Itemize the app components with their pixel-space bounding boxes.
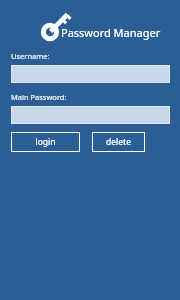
button[interactable] — [11, 106, 170, 124]
staticText: delete — [106, 136, 131, 148]
staticText: Password Manager — [61, 25, 161, 40]
other: Key logo — [36, 8, 72, 44]
button[interactable] — [11, 65, 170, 83]
button[interactable]: delete — [92, 132, 145, 152]
staticText: Main Password: — [11, 92, 67, 102]
staticText: login — [35, 136, 56, 148]
staticText: Username: — [11, 51, 50, 61]
button[interactable]: login — [11, 132, 80, 152]
